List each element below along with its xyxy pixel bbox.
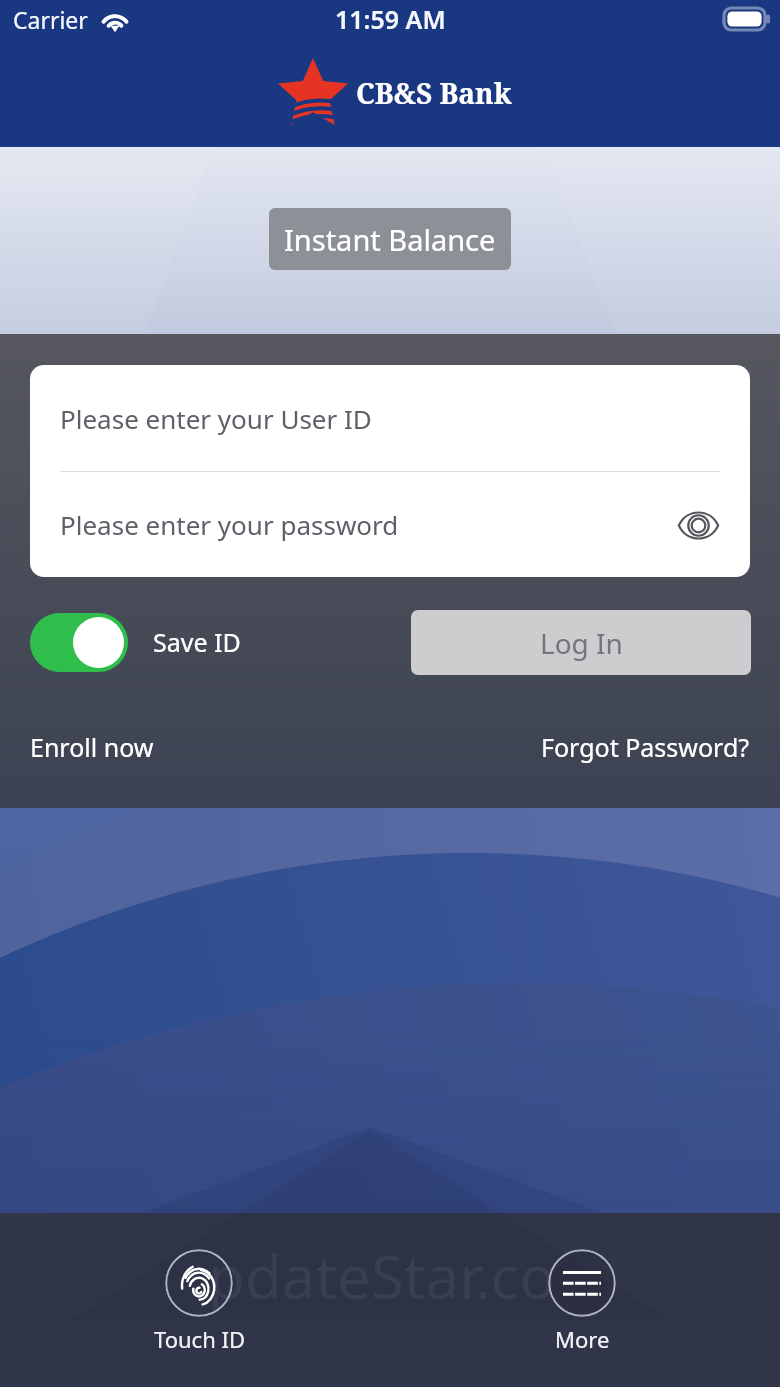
button[interactable]: More [548,1249,616,1317]
staticText: Save ID [153,625,241,659]
button[interactable]: Save ID [30,612,241,672]
staticText: Log In [540,624,623,662]
button[interactable]: Forgot Password? [541,730,750,764]
staticText: Please enter your password [60,507,399,542]
staticText: More [555,1324,610,1354]
button[interactable]: Instant Balance [269,208,511,270]
staticText: 11:59 AM [335,2,446,36]
staticText: Instant Balance [284,220,496,259]
button[interactable]: Touch ID [165,1249,233,1317]
staticText: Please enter your User ID [60,401,372,436]
staticText: Carrier [13,4,88,35]
button[interactable]: More [512,1249,652,1354]
staticText: pdateStar.co [208,1235,556,1317]
button[interactable]: Log In [411,610,751,675]
button[interactable]: Please enter your User ID [30,365,750,471]
button[interactable]: Show password [670,497,726,553]
staticText: Touch ID [154,1324,245,1354]
button[interactable]: Touch ID [129,1249,269,1354]
button[interactable]: Please enter your password [30,472,750,577]
staticText: CB&S Bank [356,74,512,112]
button[interactable]: Enroll now [30,730,154,764]
